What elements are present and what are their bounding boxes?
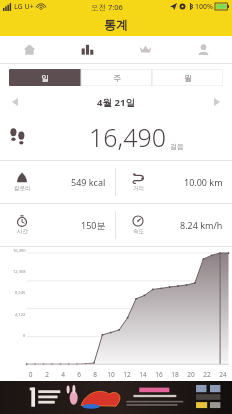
- staticText: 8,245: [15, 290, 26, 295]
- staticText: 18: [167, 370, 183, 379]
- staticText: 100%: [195, 2, 213, 12]
- staticText: 22: [199, 370, 215, 379]
- button[interactable]: 칼로리: [0, 161, 115, 203]
- staticText: 통계: [104, 17, 128, 32]
- button[interactable]: Home: [0, 36, 58, 63]
- staticText: 16: [151, 370, 167, 379]
- button[interactable]: 월: [152, 69, 223, 86]
- staticText: 14: [135, 370, 151, 379]
- button[interactable]: Previous day: [0, 91, 30, 113]
- staticText: 2: [39, 370, 55, 379]
- staticText: 549 kcal: [71, 176, 106, 188]
- button[interactable]: Ranking: [116, 36, 174, 63]
- button[interactable]: 주: [81, 69, 152, 86]
- staticText: 150분: [81, 219, 106, 231]
- button[interactable]: Statistics: [58, 36, 116, 63]
- staticText: 10.00 km: [184, 176, 223, 188]
- staticText: 월: [184, 73, 192, 83]
- staticText: 8.24 km/h: [180, 219, 223, 231]
- staticText: 주: [113, 73, 121, 83]
- staticText: 20: [183, 370, 199, 379]
- button[interactable]: Next day: [202, 91, 232, 113]
- staticText: 24: [215, 370, 231, 379]
- staticText: 12,368: [13, 269, 26, 274]
- staticText: 거리: [133, 185, 144, 192]
- staticText: 4: [55, 370, 71, 379]
- staticText: 0: [22, 370, 39, 379]
- button[interactable]: 시간: [0, 204, 115, 246]
- staticText: 16,490: [89, 120, 167, 154]
- staticText: 0: [23, 333, 26, 338]
- staticText: 시간: [17, 228, 28, 235]
- button[interactable]: 일: [9, 69, 81, 86]
- staticText: 4월 21일: [30, 96, 202, 109]
- staticText: 16,490: [13, 248, 26, 253]
- staticText: 오전 7:06: [91, 2, 123, 12]
- button[interactable]: Profile: [174, 36, 232, 63]
- button[interactable]: 속도: [116, 204, 232, 246]
- staticText: 12: [119, 370, 135, 379]
- staticText: 속도: [133, 228, 144, 235]
- staticText: 일: [41, 73, 49, 83]
- button[interactable]: Advertisement: [0, 381, 232, 414]
- staticText: 걸음: [170, 142, 184, 151]
- button[interactable]: 거리: [116, 161, 232, 203]
- staticText: 칼로리: [14, 185, 31, 192]
- staticText: 10: [103, 370, 119, 379]
- staticText: 8: [87, 370, 103, 379]
- staticText: 4,122: [15, 312, 26, 317]
- staticText: 6: [71, 370, 87, 379]
- staticText: LG U+: [14, 2, 34, 12]
